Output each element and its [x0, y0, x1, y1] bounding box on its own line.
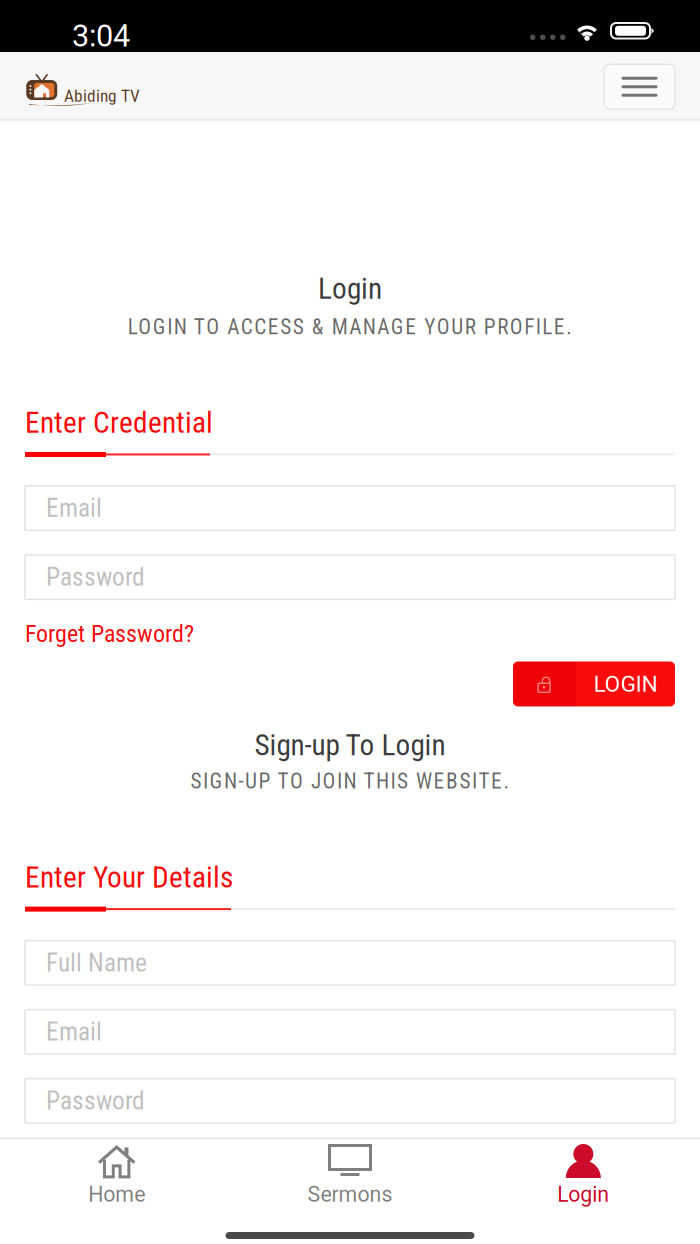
staticText: Login	[318, 272, 382, 306]
staticText: Full Name	[46, 948, 147, 978]
staticText: SIGN-UP TO JOIN THIS WEBSITE.	[190, 769, 509, 794]
button[interactable]: Forget Password?	[25, 620, 194, 648]
button[interactable]: LOGIN	[513, 661, 675, 706]
staticText: LOGIN	[593, 671, 657, 697]
staticText: Abiding TV	[64, 86, 140, 106]
button[interactable]: Home	[0, 1139, 233, 1211]
staticText: Home	[88, 1182, 145, 1207]
button[interactable]: Login	[467, 1139, 700, 1211]
staticText: Sermons	[307, 1182, 392, 1207]
staticText: Enter Credential	[25, 406, 213, 440]
staticText: LOGIN TO ACCESS & MANAGE YOUR PROFILE.	[128, 314, 572, 339]
staticText: Login	[557, 1182, 609, 1207]
staticText: Sign-up To Login	[254, 728, 445, 762]
button[interactable]: Menu	[604, 64, 675, 109]
staticText: 3:04	[72, 18, 130, 54]
staticText: Forget Password?	[25, 620, 194, 648]
staticText: Password	[46, 562, 145, 592]
button[interactable]: Sermons	[233, 1139, 467, 1211]
staticText: Password	[46, 1086, 145, 1116]
staticText: Email	[46, 493, 102, 523]
staticText: Email	[46, 1017, 102, 1047]
staticText: Enter Your Details	[25, 860, 233, 895]
